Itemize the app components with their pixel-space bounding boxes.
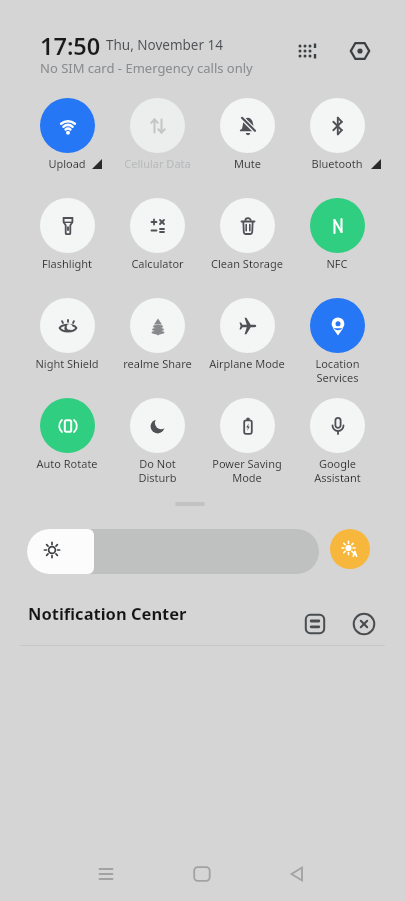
staticText: Night Shield	[35, 356, 99, 371]
button[interactable]	[279, 856, 315, 892]
button[interactable]: realme Share	[112, 298, 202, 371]
staticText: Mute	[234, 156, 261, 171]
button[interactable]: Flashlight	[22, 198, 112, 271]
staticText: Thu, November 14	[106, 36, 224, 54]
button[interactable]: Clean Storage	[202, 198, 292, 271]
staticText: realme Share	[123, 356, 192, 371]
staticText: Clean Storage	[211, 256, 283, 271]
staticText: Location Services	[315, 356, 360, 385]
staticText: Notification Center	[28, 602, 187, 624]
button[interactable]	[297, 606, 333, 642]
button[interactable]: Mute	[202, 98, 292, 171]
staticText: Upload	[48, 156, 86, 171]
staticText: Auto Rotate	[36, 456, 98, 471]
button[interactable]: Do Not Disturb	[112, 398, 202, 485]
button[interactable]	[289, 33, 325, 69]
button[interactable]: Night Shield	[22, 298, 112, 371]
button[interactable]	[184, 856, 220, 892]
staticText: Calculator	[131, 256, 184, 271]
staticText: Do Not Disturb	[138, 456, 177, 485]
button[interactable]	[330, 529, 370, 569]
button[interactable]: Location Services	[292, 298, 382, 385]
staticText: No SIM card - Emergency calls only	[40, 59, 253, 77]
staticText: Airplane Mode	[209, 356, 285, 371]
button[interactable]: Power Saving Mode	[202, 398, 292, 485]
button[interactable]	[342, 33, 378, 69]
staticText: Flashlight	[42, 256, 92, 271]
staticText: NFC	[326, 256, 348, 271]
button[interactable]: Calculator	[112, 198, 202, 271]
button[interactable]	[27, 529, 319, 574]
button[interactable]: Auto Rotate	[22, 398, 112, 471]
button[interactable]: Upload	[22, 98, 112, 171]
button[interactable]	[346, 606, 382, 642]
button[interactable]: Bluetooth	[292, 98, 382, 171]
staticText: Power Saving Mode	[212, 456, 282, 485]
staticText: Bluetooth	[311, 156, 363, 171]
staticText: 17:50	[40, 30, 101, 62]
staticText: Cellular Data	[124, 156, 191, 171]
button[interactable]: NFC	[292, 198, 382, 271]
button[interactable]: Cellular Data	[112, 98, 202, 171]
button[interactable]: Google Assistant	[292, 398, 382, 485]
button[interactable]	[88, 856, 124, 892]
button[interactable]: Airplane Mode	[202, 298, 292, 371]
staticText: Google Assistant	[314, 456, 361, 485]
